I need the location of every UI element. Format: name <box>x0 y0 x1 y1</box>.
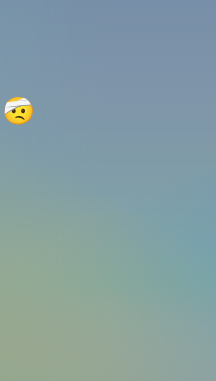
button[interactable]: Injured face sticker <box>1 96 34 126</box>
staticText: 🤕 <box>1 96 34 126</box>
